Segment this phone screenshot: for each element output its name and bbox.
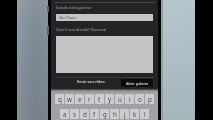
button[interactable]: Envie seu vídeo [64,77,118,86]
button[interactable]: w [65,94,74,104]
staticText: r [88,95,91,103]
staticText: h [113,110,117,118]
button[interactable]: g [100,109,109,119]
button[interactable]: t [95,94,104,104]
staticText: Estado (obrigatório) [56,5,92,10]
button[interactable]: a [60,109,69,119]
button[interactable]: d [80,109,89,119]
staticText: e [78,95,82,103]
button[interactable]: e [75,94,84,104]
staticText: Abrir galeria [126,81,149,86]
staticText: São Paulo [59,15,77,20]
staticText: d [83,110,87,118]
button[interactable]: r [85,94,94,104]
button[interactable]: j [120,109,129,119]
button[interactable]: São Paulo [56,14,153,21]
staticText: w [67,95,72,103]
button[interactable]: f [90,109,99,119]
button[interactable]: h [110,109,119,119]
staticText: u [118,95,122,103]
staticText: Qual é sua dúvida? (Escreva) [56,27,107,32]
staticText: o [138,95,142,103]
staticText: s [73,110,76,118]
staticText: g [103,110,107,118]
staticText: i [129,95,131,103]
staticText: f [93,110,96,118]
staticText: k [133,110,137,118]
staticText: l [144,110,146,118]
staticText: Envie seu vídeo [77,79,105,84]
staticText: a [63,110,67,118]
button[interactable]: k [130,109,139,119]
staticText: j [124,110,126,118]
button[interactable]: Abrir galeria [121,79,153,87]
staticText: q [58,95,62,103]
button[interactable]: y [105,94,114,104]
button[interactable]: q [55,94,64,104]
button[interactable]: i [125,94,134,104]
staticText: t [98,95,101,103]
staticText: y [108,95,112,103]
button[interactable]: p [145,94,154,104]
button[interactable]: s [70,109,79,119]
button[interactable]: o [135,94,144,104]
button[interactable]: l [140,109,149,119]
staticText: p [148,95,152,103]
button[interactable]: u [115,94,124,104]
